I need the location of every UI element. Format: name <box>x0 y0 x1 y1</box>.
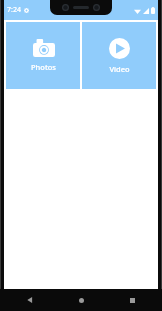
button[interactable]: Video <box>82 22 156 89</box>
staticText: Photos <box>31 62 56 72</box>
button[interactable]: Back <box>22 292 38 308</box>
button[interactable]: Photos <box>6 22 80 89</box>
staticText: 7:24 <box>7 5 21 15</box>
button[interactable]: Recents <box>124 292 140 308</box>
button[interactable]: Home <box>73 292 89 308</box>
staticText: Video <box>109 64 130 74</box>
